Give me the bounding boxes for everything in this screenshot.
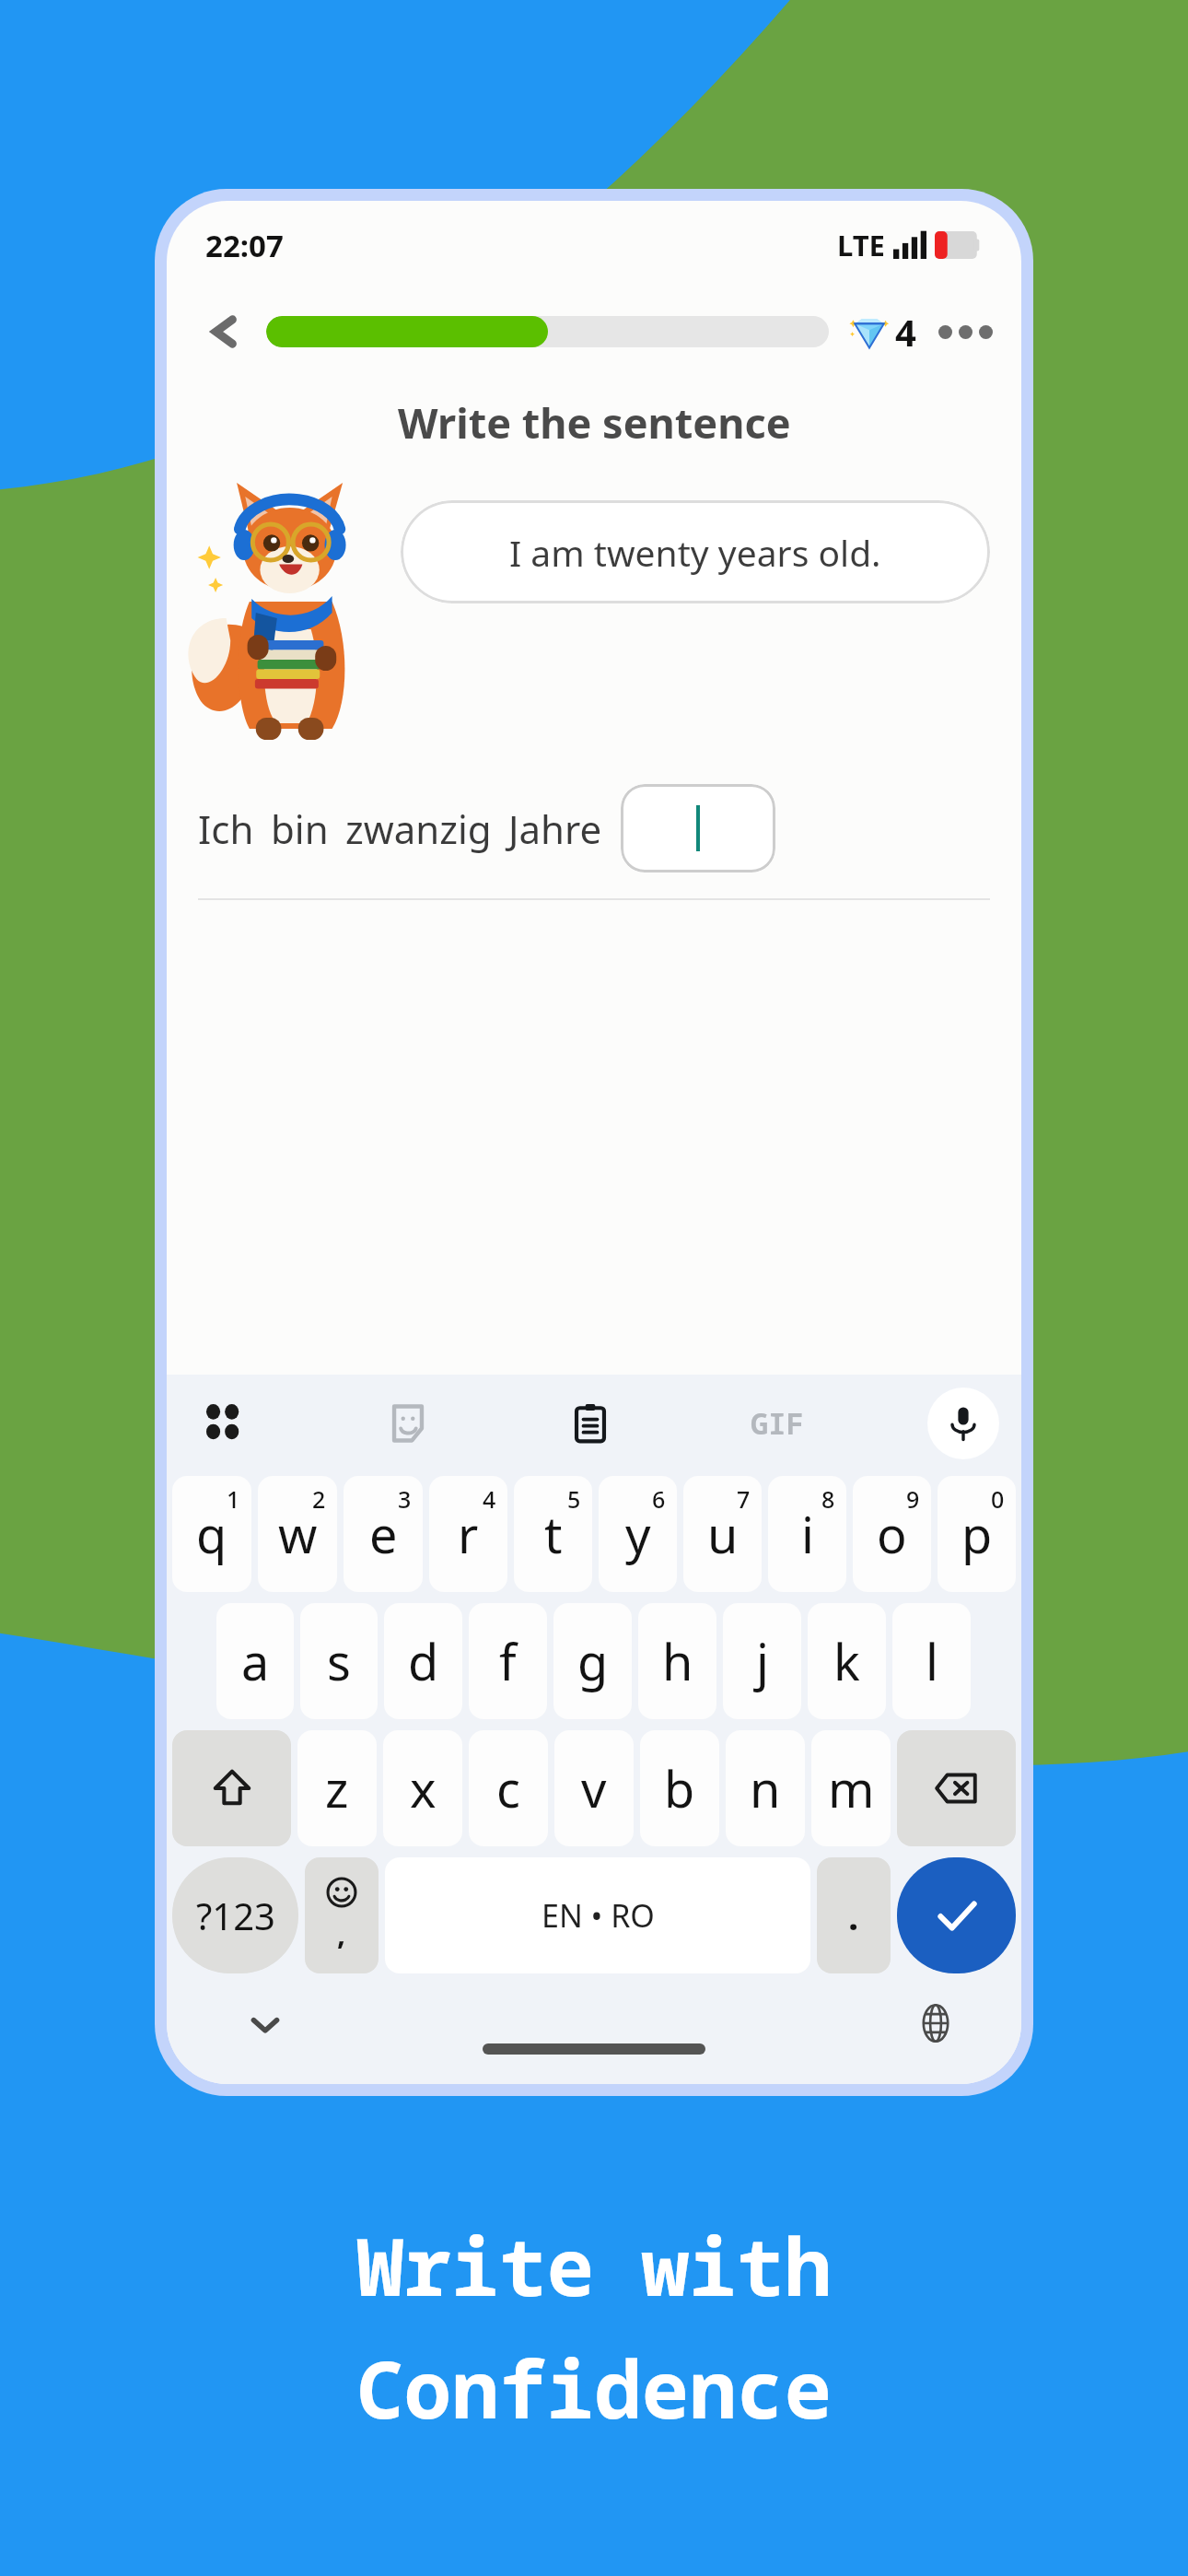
staticText: 4	[895, 307, 916, 357]
staticText: x	[410, 1754, 437, 1822]
staticText: .	[848, 1891, 859, 1940]
button[interactable]: c	[469, 1730, 548, 1846]
staticText: w	[278, 1500, 318, 1568]
staticText: m	[828, 1754, 875, 1822]
button[interactable]: g	[553, 1603, 632, 1719]
staticText: 8	[821, 1483, 835, 1515]
button[interactable]	[266, 316, 829, 347]
staticText: k	[833, 1627, 860, 1695]
staticText: Confidence	[356, 2334, 832, 2441]
staticText: 0	[991, 1483, 1005, 1515]
staticText: g	[577, 1627, 609, 1695]
button[interactable]: More options	[937, 303, 994, 360]
button[interactable]: Hide keyboard	[235, 1995, 296, 2055]
staticText: a	[241, 1627, 270, 1695]
button[interactable]: EN • RO	[385, 1857, 810, 1973]
button[interactable]: I am twenty years old.	[401, 500, 990, 603]
button[interactable]: Emoji	[305, 1857, 379, 1973]
button[interactable]: e	[344, 1476, 423, 1592]
staticText: Ich	[198, 802, 254, 855]
button[interactable]: i	[768, 1476, 846, 1592]
button[interactable]: z	[297, 1730, 377, 1846]
button[interactable]: r	[429, 1476, 507, 1592]
button[interactable]: o	[853, 1476, 931, 1592]
button[interactable]: Keyboard menu	[189, 1387, 262, 1460]
staticText: f	[499, 1627, 517, 1695]
staticText: y	[625, 1500, 651, 1568]
button[interactable]: j	[723, 1603, 801, 1719]
button[interactable]: Back	[194, 301, 255, 362]
button[interactable]: u	[683, 1476, 762, 1592]
staticText: t	[544, 1500, 563, 1568]
button[interactable]: .	[817, 1857, 891, 1973]
button[interactable]: y	[599, 1476, 677, 1592]
button[interactable]: f	[469, 1603, 547, 1719]
staticText: 6	[652, 1483, 666, 1515]
staticText: i	[801, 1500, 814, 1568]
staticText: zwanzig	[345, 802, 492, 855]
staticText: I am twenty years old.	[509, 528, 881, 577]
staticText: 2	[312, 1483, 326, 1515]
button[interactable]: v	[554, 1730, 634, 1846]
staticText: e	[369, 1500, 398, 1568]
button[interactable]: Stickers	[371, 1387, 445, 1460]
staticText: 5	[567, 1483, 581, 1515]
staticText: q	[196, 1500, 227, 1568]
button[interactable]: n	[726, 1730, 805, 1846]
button[interactable]: a	[216, 1603, 294, 1719]
staticText: 3	[398, 1483, 412, 1515]
staticText: v	[581, 1754, 607, 1822]
staticText: Write with	[356, 2211, 832, 2319]
button[interactable]	[621, 784, 775, 872]
button[interactable]: Submit	[897, 1857, 1016, 1973]
button[interactable]: Voice input	[927, 1388, 999, 1459]
staticText: ?123	[196, 1891, 275, 1940]
button[interactable]: Backspace	[897, 1730, 1016, 1846]
staticText: u	[707, 1500, 739, 1568]
button[interactable]: b	[640, 1730, 719, 1846]
staticText: 4	[483, 1483, 496, 1515]
staticText: l	[926, 1627, 938, 1695]
button[interactable]: x	[383, 1730, 462, 1846]
staticText: r	[458, 1500, 479, 1568]
button[interactable]: GIF	[736, 1391, 819, 1456]
button[interactable]: l	[892, 1603, 971, 1719]
staticText: 7	[737, 1483, 751, 1515]
staticText: s	[327, 1627, 351, 1695]
button[interactable]: s	[300, 1603, 378, 1719]
staticText: GIF	[751, 1403, 804, 1444]
staticText: 22:07	[205, 225, 284, 266]
button[interactable]: h	[638, 1603, 716, 1719]
staticText: EN • RO	[542, 1894, 655, 1937]
staticText: n	[750, 1754, 781, 1822]
staticText: Write the sentence	[398, 394, 791, 451]
staticText: j	[756, 1627, 769, 1695]
staticText: LTE	[837, 226, 885, 264]
button[interactable]: q	[172, 1476, 251, 1592]
staticText: o	[877, 1500, 907, 1568]
button[interactable]: d	[384, 1603, 462, 1719]
staticText: c	[496, 1754, 520, 1822]
staticText: h	[662, 1627, 693, 1695]
staticText: b	[664, 1754, 695, 1822]
button[interactable]: p	[938, 1476, 1016, 1592]
staticText: Jahre	[508, 802, 602, 855]
button[interactable]: Clipboard	[553, 1387, 627, 1460]
staticText: ,	[337, 1914, 346, 1954]
staticText: d	[408, 1627, 439, 1695]
staticText: 1	[227, 1483, 240, 1515]
button[interactable]: Shift	[172, 1730, 291, 1846]
staticText: 9	[906, 1483, 920, 1515]
staticText: bin	[271, 802, 329, 855]
button[interactable]: Change language	[905, 1993, 966, 2054]
button[interactable]: m	[811, 1730, 891, 1846]
staticText: p	[961, 1500, 993, 1568]
staticText: z	[325, 1754, 349, 1822]
button[interactable]: ?123	[172, 1857, 298, 1973]
button[interactable]: t	[514, 1476, 592, 1592]
button[interactable]: k	[808, 1603, 886, 1719]
button[interactable]: w	[258, 1476, 337, 1592]
button[interactable]: 4	[849, 307, 916, 357]
